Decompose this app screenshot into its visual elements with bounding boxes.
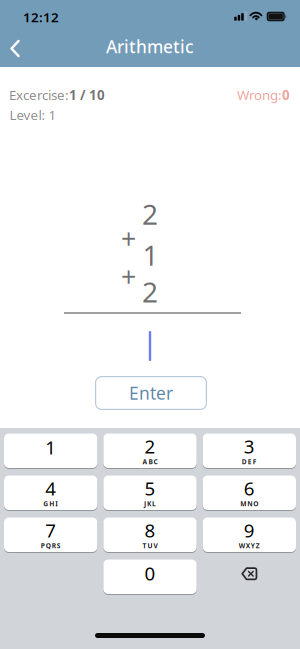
staticText: TUV [142,541,157,550]
staticText: 2 [142,195,158,233]
button[interactable]: 5 [103,475,197,510]
staticText: 1 / 10 [69,86,105,104]
staticText: Arithmetic [106,35,194,58]
staticText: 9 [244,518,255,543]
staticText: Enter [129,381,173,404]
button[interactable]: Enter [95,376,207,410]
staticText: 5 [144,476,155,501]
staticText: Wrong: [237,86,282,104]
button[interactable]: 8 [103,517,197,552]
staticText: Excercise: [9,86,69,104]
button[interactable]: 6 [203,475,296,510]
staticText: ABC [142,457,157,466]
staticText: 12:12 [23,8,59,26]
staticText: 2 [142,273,158,310]
staticText: 1 [45,435,56,460]
staticText: 6 [244,476,255,501]
button[interactable]: 1 [4,433,97,468]
staticText: Level: 1 [9,106,56,124]
button[interactable]: 3 [203,433,296,468]
staticText: + [121,221,136,256]
button[interactable]: 7 [4,517,97,552]
button[interactable]: 2 [103,433,197,468]
staticText: 2 [144,434,155,459]
button[interactable]: 4 [4,475,97,510]
button[interactable]: 0 [103,559,197,594]
staticText: PQRS [41,541,61,550]
staticText: 0 [144,561,155,586]
staticText: JKL [144,499,156,508]
staticText: GHI [43,499,58,508]
staticText: 4 [45,476,56,501]
staticText: MNO [240,499,258,508]
staticText: 8 [144,518,155,543]
staticText: 7 [45,518,56,543]
staticText: DEF [242,457,257,466]
staticText: + [121,259,136,294]
button[interactable]: Delete [203,559,296,594]
button[interactable]: 9 [203,517,296,552]
button[interactable]: Back [0,30,36,67]
staticText: 3 [244,434,255,459]
staticText: 0 [282,86,290,104]
staticText: 1 [142,236,158,274]
staticText: WXYZ [239,541,260,550]
